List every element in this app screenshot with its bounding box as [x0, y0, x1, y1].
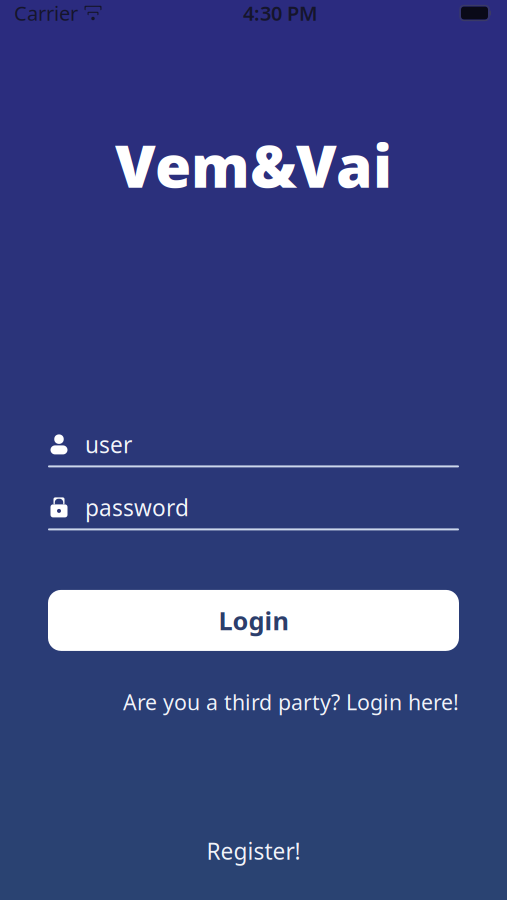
button[interactable]: Are you a third party? Login here! — [123, 688, 459, 716]
staticText: Register! — [206, 836, 300, 866]
staticText: 4:30 PM — [243, 0, 318, 26]
staticText: Vem&Vai — [115, 126, 392, 204]
staticText: password — [85, 492, 189, 522]
staticText: Login — [218, 604, 288, 637]
staticText: Carrier — [14, 0, 78, 26]
staticText: Are you a third party? Login here! — [123, 688, 459, 716]
button[interactable]: Login — [48, 590, 459, 651]
staticText: user — [85, 429, 132, 459]
button[interactable]: Register! — [206, 836, 300, 866]
